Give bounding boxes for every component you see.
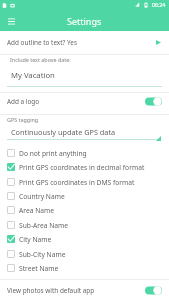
button[interactable]: Country Name: [0, 189, 169, 203]
staticText: Print GPS coordinates in DMS format: [19, 178, 135, 187]
button[interactable]: Open navigation menu: [4, 14, 18, 28]
staticText: Add a logo: [7, 97, 40, 106]
staticText: Street Name: [19, 264, 59, 273]
button[interactable]: Street Name: [0, 261, 169, 275]
button[interactable]: Sub-Area Name: [0, 218, 169, 232]
button[interactable]: Do not print anything: [0, 146, 169, 160]
staticText: View photos with default app: [7, 286, 95, 295]
staticText: Do not print anything: [19, 149, 87, 158]
button[interactable]: Area Name: [0, 203, 169, 217]
button[interactable]: Sub-City Name: [0, 247, 169, 261]
staticText: 06:24: [152, 1, 166, 8]
staticText: Settings: [67, 15, 102, 27]
staticText: Include text above date:: [10, 56, 71, 63]
button[interactable]: Add a logo: [0, 92, 169, 111]
staticText: Sub-Area Name: [19, 221, 69, 230]
staticText: Country Name: [19, 192, 65, 201]
staticText: Area Name: [19, 206, 55, 215]
button[interactable]: Add outline to text? Yes: [0, 33, 169, 52]
staticText: Sub-City Name: [19, 250, 66, 259]
staticText: GPS tagging: [7, 116, 39, 123]
staticText: My Vacation: [11, 70, 55, 80]
button[interactable]: Print GPS coordinates in DMS format: [0, 175, 169, 189]
staticText: Continuously update GPS data: [11, 127, 116, 137]
staticText: Add outline to text? Yes: [7, 38, 77, 47]
staticText: Print GPS coordinates in decimal format: [19, 163, 145, 172]
staticText: City Name: [19, 235, 52, 244]
button[interactable]: City Name: [0, 232, 169, 246]
button[interactable]: View photos with default app: [0, 280, 169, 300]
button[interactable]: Print GPS coordinates in decimal format: [0, 160, 169, 174]
